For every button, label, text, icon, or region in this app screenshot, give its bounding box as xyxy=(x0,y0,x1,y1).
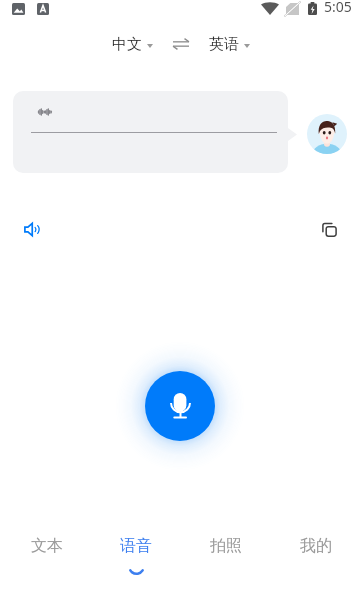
button[interactable]: 英语 xyxy=(207,32,252,57)
button[interactable]: 我的 xyxy=(271,528,359,596)
button[interactable]: Record voice xyxy=(145,371,215,441)
staticText: 英语 xyxy=(209,35,239,54)
button[interactable]: 语音 xyxy=(91,528,181,596)
button[interactable]: 中文 xyxy=(110,32,155,57)
staticText: 我的 xyxy=(300,536,332,556)
button[interactable] xyxy=(13,91,288,173)
button[interactable]: 文本 xyxy=(2,528,91,596)
staticText: 文本 xyxy=(31,536,63,556)
button[interactable]: Copy xyxy=(318,219,340,241)
button[interactable]: 拍照 xyxy=(181,528,271,596)
staticText: 中文 xyxy=(112,35,142,54)
staticText: 语音 xyxy=(120,536,152,556)
staticText: 拍照 xyxy=(210,536,242,556)
button[interactable]: Play audio xyxy=(20,219,42,241)
staticText: 5:05 xyxy=(324,0,352,16)
button[interactable]: Swap languages xyxy=(169,32,193,56)
